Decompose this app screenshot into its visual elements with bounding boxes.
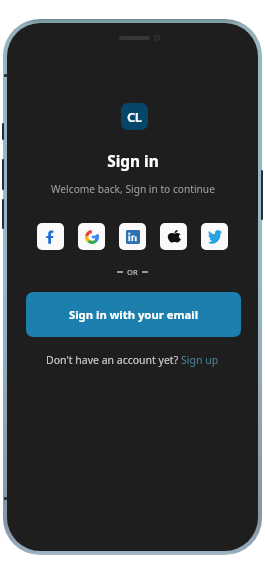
staticText: Sign in xyxy=(107,151,159,172)
staticText: Welcome back, Sign in to continue xyxy=(51,182,215,196)
staticText: Sign in with your email xyxy=(69,307,199,322)
button[interactable]: Sign in with Google xyxy=(78,223,105,250)
staticText: Sign up xyxy=(181,353,219,367)
button[interactable]: Sign in with Facebook xyxy=(37,223,64,250)
button[interactable]: Sign in with your email xyxy=(26,292,241,337)
staticText: CL xyxy=(127,108,142,126)
button[interactable]: Sign in with Apple xyxy=(160,223,187,250)
button[interactable]: Sign up xyxy=(181,353,219,367)
button[interactable]: Sign in with LinkedIn xyxy=(119,223,146,250)
button[interactable]: CL xyxy=(121,103,148,130)
button[interactable]: Sign in with Twitter xyxy=(201,223,228,250)
staticText: Don't have an account yet? xyxy=(46,353,181,367)
staticText: OR xyxy=(127,267,138,277)
